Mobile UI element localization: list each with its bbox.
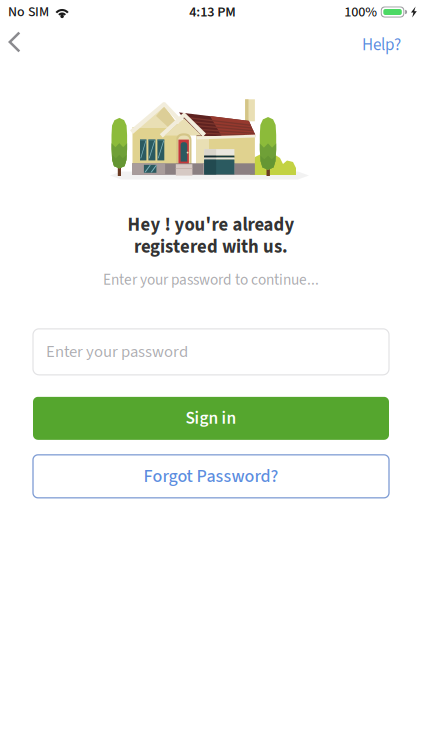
- staticText: Sign in: [185, 406, 236, 431]
- staticText: 100%: [344, 2, 377, 22]
- staticText: Enter your password: [46, 340, 188, 364]
- staticText: Enter your password to continue...: [103, 269, 319, 291]
- staticText: 4:13 PM: [189, 2, 236, 22]
- button[interactable]: Help?: [346, 22, 422, 62]
- staticText: registered with us.: [134, 234, 288, 260]
- staticText: No SIM: [8, 2, 49, 22]
- button[interactable]: Sign in: [0, 397, 422, 440]
- button[interactable]: Back: [0, 24, 37, 60]
- staticText: Forgot Password?: [143, 463, 278, 489]
- staticText: Hey ! you're already: [127, 212, 294, 238]
- staticText: Help?: [362, 33, 401, 57]
- button[interactable]: Forgot Password?: [0, 455, 422, 498]
